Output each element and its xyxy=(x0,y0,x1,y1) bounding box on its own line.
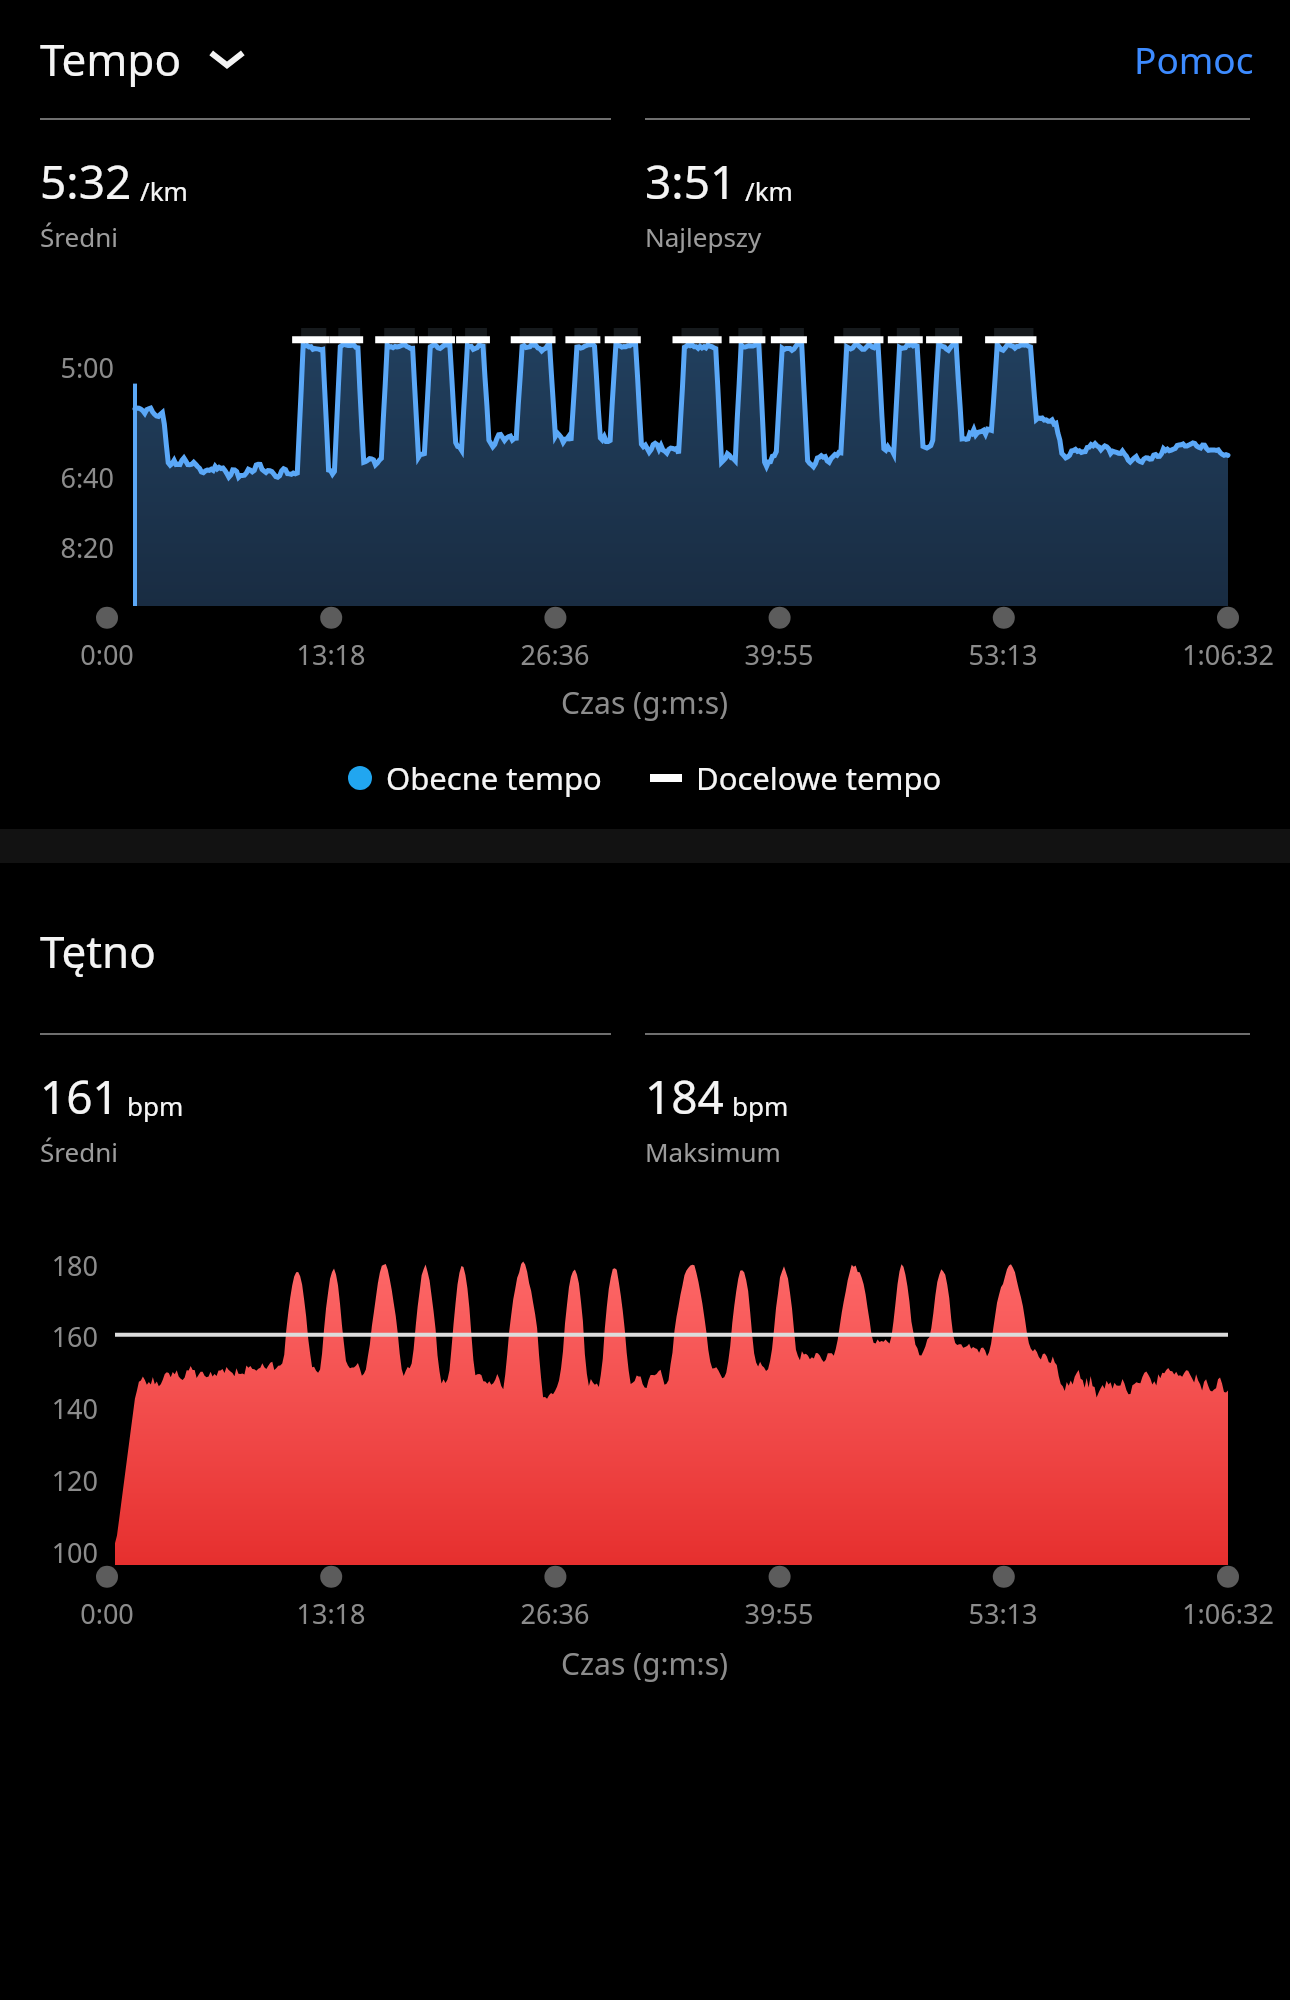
staticText: /km xyxy=(140,173,188,208)
staticText: Maksimum xyxy=(645,1134,781,1169)
button[interactable]: Tempo xyxy=(40,29,248,89)
staticText: 6:40 xyxy=(42,459,114,496)
staticText: 160 xyxy=(28,1318,98,1355)
staticText: Docelowe tempo xyxy=(696,757,942,799)
staticText: Tempo xyxy=(40,29,182,89)
staticText: 39:55 xyxy=(744,636,814,673)
staticText: 100 xyxy=(28,1534,98,1571)
staticText: 8:20 xyxy=(42,529,114,566)
staticText: Czas (g:m:s) xyxy=(561,1643,729,1684)
staticText: 13:18 xyxy=(296,1595,366,1632)
staticText: Średni xyxy=(40,219,118,254)
staticText: 140 xyxy=(28,1390,98,1427)
staticText: 184 xyxy=(645,1065,724,1128)
other: Change metric xyxy=(206,38,248,80)
staticText: Średni xyxy=(40,1134,118,1169)
staticText: 53:13 xyxy=(968,636,1038,673)
staticText: 5:32 xyxy=(40,150,132,213)
staticText: 39:55 xyxy=(744,1595,814,1632)
staticText: 53:13 xyxy=(968,1595,1038,1632)
staticText: Czas (g:m:s) xyxy=(561,682,729,723)
staticText: 26:36 xyxy=(520,636,590,673)
staticText: 5:00 xyxy=(42,349,114,386)
staticText: Pomoc xyxy=(1134,34,1254,84)
staticText: 180 xyxy=(28,1247,98,1284)
staticText: bpm xyxy=(732,1088,789,1123)
staticText: 0:00 xyxy=(80,636,134,673)
staticText: Obecne tempo xyxy=(386,757,602,799)
staticText: /km xyxy=(745,173,793,208)
button[interactable]: Pomoc xyxy=(1134,34,1254,84)
staticText: 120 xyxy=(28,1462,98,1499)
staticText: bpm xyxy=(127,1088,184,1123)
staticText: 1:06:32 xyxy=(1182,636,1274,673)
staticText: Tętno xyxy=(40,921,156,981)
staticText: 13:18 xyxy=(296,636,366,673)
staticText: 1:06:32 xyxy=(1182,1595,1274,1632)
staticText: 0:00 xyxy=(80,1595,134,1632)
staticText: 3:51 xyxy=(645,150,737,213)
staticText: 161 xyxy=(40,1065,119,1128)
staticText: Najlepszy xyxy=(645,219,762,254)
staticText: 26:36 xyxy=(520,1595,590,1632)
